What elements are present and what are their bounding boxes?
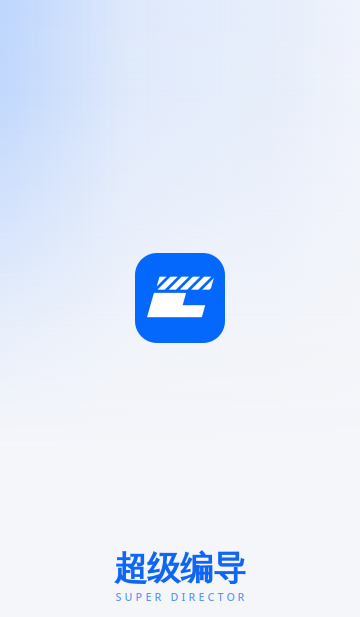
staticText: 超级编导 <box>114 548 246 589</box>
staticText: S U P E R D I R E C T O R <box>115 590 244 604</box>
